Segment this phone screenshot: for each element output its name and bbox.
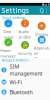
staticText: Bluetooth xyxy=(9,88,32,96)
button[interactable]: S xyxy=(0,63,50,77)
button[interactable]: B xyxy=(0,87,50,97)
staticText: 🔒 xyxy=(21,42,28,48)
staticText: Quick settings xyxy=(1,15,25,20)
staticText: ☀ xyxy=(39,23,44,29)
staticText: Display xyxy=(35,31,48,37)
button[interactable]: More options xyxy=(43,7,48,13)
staticText: ✓ xyxy=(6,39,10,45)
button[interactable]: ~ xyxy=(0,19,17,39)
staticText: ▮▮ ▲ ▮ xyxy=(42,3,49,6)
staticText: ♪ xyxy=(23,20,26,26)
staticText: Settings xyxy=(1,6,28,15)
button[interactable]: ♪ xyxy=(17,19,33,39)
staticText: Wi-Fi xyxy=(9,78,21,86)
staticText: W xyxy=(2,79,6,85)
staticText: Q xyxy=(39,7,43,14)
button[interactable]: ▦ xyxy=(33,36,50,61)
staticText: Power manager xyxy=(0,48,16,58)
staticText: B xyxy=(2,89,5,95)
staticText: Security xyxy=(18,50,32,56)
staticText: S xyxy=(3,67,5,73)
button[interactable]: 🔒 xyxy=(17,41,33,56)
button[interactable]: Search xyxy=(39,7,43,14)
staticText: WIRELESS & NETWORKS xyxy=(1,59,28,62)
button[interactable]: ☀ xyxy=(33,22,50,37)
button[interactable]: W xyxy=(0,77,50,87)
staticText: ▦ xyxy=(39,37,44,43)
staticText: Data usage xyxy=(3,29,13,39)
staticText: ⋮ xyxy=(43,7,48,13)
staticText: Audio profiles xyxy=(18,29,31,39)
staticText: ~ xyxy=(7,20,10,27)
staticText: Application Manager xyxy=(34,45,50,61)
button[interactable]: ✓ xyxy=(0,38,17,58)
staticText: SIM management xyxy=(9,63,42,77)
